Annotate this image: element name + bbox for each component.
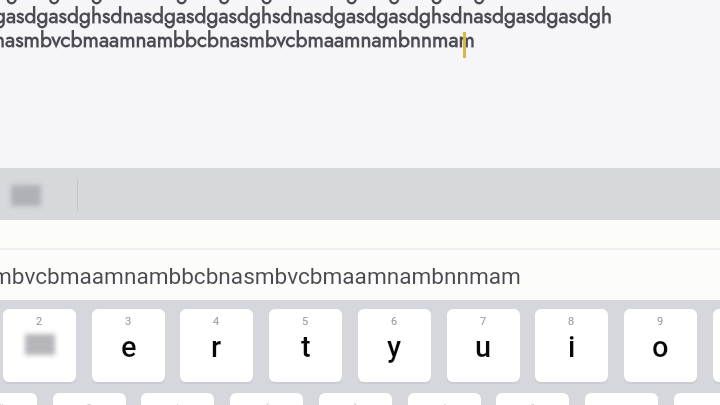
staticText: 4 [213, 315, 220, 328]
button[interactable]: 0 [713, 309, 720, 382]
staticText: 2 [36, 315, 43, 328]
button[interactable]: Key [408, 393, 481, 405]
staticText: i [568, 330, 576, 364]
staticText: 3 [125, 315, 132, 328]
button[interactable]: 5 [269, 309, 342, 382]
button[interactable]: Suggestion [0, 174, 55, 215]
button[interactable]: Key [319, 393, 392, 405]
button[interactable]: Key [674, 393, 720, 405]
staticText: y [387, 330, 402, 364]
staticText: 7 [480, 315, 487, 328]
button[interactable]: 8 [535, 309, 608, 382]
button[interactable]: 3 [92, 309, 165, 382]
staticText: gasdgasdghsdnasdgasdgasdghsdnasdgasdgasd… [0, 1, 612, 31]
button[interactable]: Key [141, 393, 214, 405]
button[interactable]: 9 [624, 309, 697, 382]
staticText: 6 [391, 315, 398, 328]
button[interactable]: Key [53, 393, 126, 405]
button[interactable]: 7 [447, 309, 520, 382]
staticText: 5 [302, 315, 309, 328]
staticText: ) [354, 402, 358, 405]
button[interactable]: 6 [358, 309, 431, 382]
staticText: r [211, 330, 222, 364]
button[interactable]: Key [496, 393, 569, 405]
staticText: # [0, 402, 4, 405]
staticText: dgasdgasdghsdnasdgasdgasdghsdnasdgasdgas… [0, 0, 505, 7]
staticText: ( [265, 402, 269, 405]
staticText: & [86, 402, 93, 405]
staticText: " [531, 402, 535, 405]
staticText: t [301, 330, 311, 364]
staticText: * [175, 402, 180, 405]
staticText: ' [444, 402, 446, 405]
button[interactable]: 4 [180, 309, 253, 382]
button[interactable]: Key [230, 393, 303, 405]
staticText: o [652, 330, 669, 364]
button[interactable]: Key [0, 393, 37, 405]
staticText: e [121, 330, 137, 364]
button[interactable]: 2 [3, 309, 76, 382]
staticText: mbvcbmaamnambbcbnasmbvcbmaamnambnnmam [0, 263, 521, 289]
staticText: 9 [657, 315, 664, 328]
staticText: nasmbvcbmaamnambbcbnasmbvcbmaamnambnnmam [0, 25, 475, 55]
staticText: u [475, 330, 492, 364]
button[interactable]: Key [585, 393, 658, 405]
staticText: 8 [568, 315, 575, 328]
